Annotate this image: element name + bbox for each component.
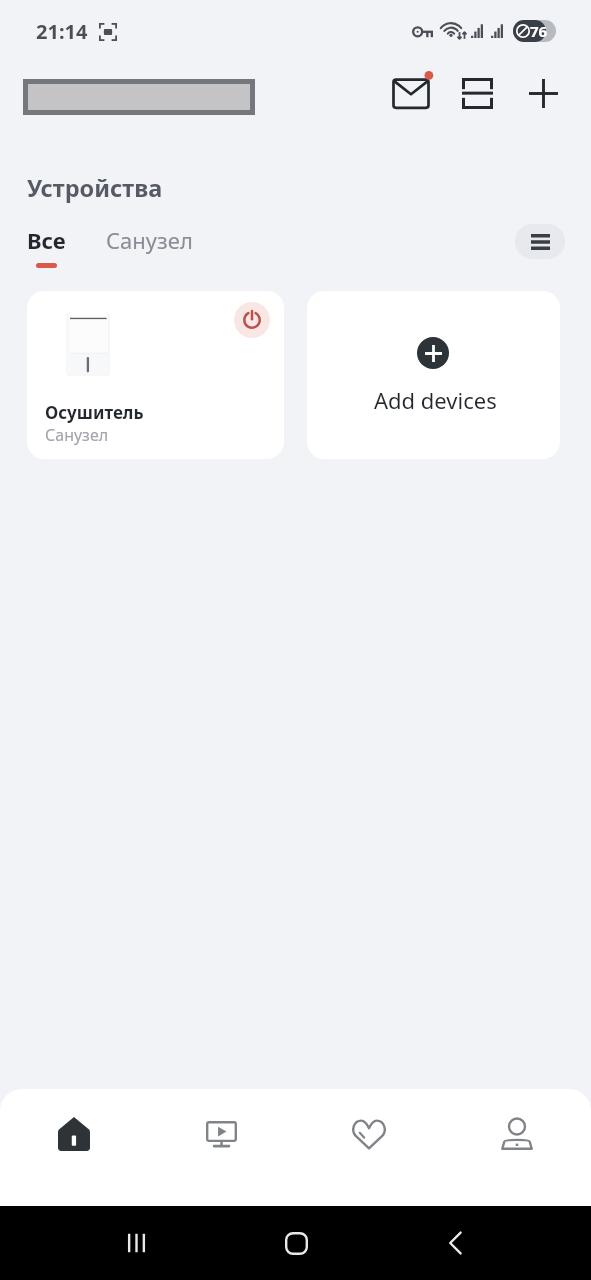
button[interactable]: Profile	[443, 1089, 591, 1179]
button[interactable]: Санузел	[106, 225, 193, 255]
button[interactable]: Media	[147, 1089, 295, 1179]
button[interactable]: Add devices	[307, 291, 560, 459]
button[interactable]: Messages	[392, 71, 432, 111]
staticText: Осушитель	[45, 401, 144, 424]
button[interactable]: Все	[27, 225, 66, 268]
button[interactable]: Power	[234, 302, 270, 338]
staticText: Все	[27, 225, 66, 255]
button[interactable]: Recents	[113, 1220, 159, 1266]
staticText: Устройства	[27, 172, 163, 204]
button[interactable]: Back	[432, 1220, 478, 1266]
staticText: Add devices	[374, 385, 497, 415]
staticText: 76	[530, 21, 548, 41]
staticText: 21:14	[36, 18, 88, 45]
button[interactable]: Favourites	[295, 1089, 443, 1179]
button[interactable]: Menu	[515, 224, 565, 259]
button[interactable]: Layout	[462, 78, 493, 109]
button[interactable]: Home	[0, 1089, 147, 1179]
button[interactable]: Power	[27, 291, 284, 459]
button[interactable]: Add	[529, 79, 558, 108]
button[interactable]: Home	[273, 1220, 319, 1266]
staticText: Санузел	[45, 424, 109, 446]
